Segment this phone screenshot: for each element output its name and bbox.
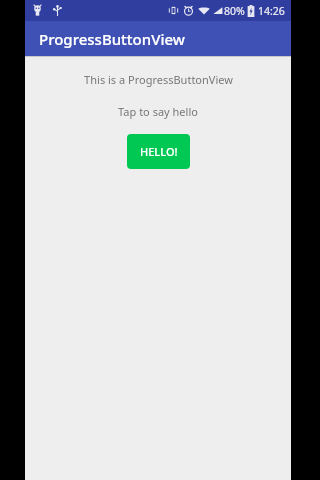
staticText: Tap to say hello — [118, 104, 198, 119]
staticText: ProgressButtonView — [39, 29, 185, 49]
staticText: 14:26 — [258, 4, 285, 18]
staticText: This is a ProgressButtonView — [84, 72, 233, 87]
staticText: 80% — [224, 4, 245, 18]
button[interactable]: HELLO! — [127, 134, 190, 169]
staticText: HELLO! — [140, 144, 178, 159]
